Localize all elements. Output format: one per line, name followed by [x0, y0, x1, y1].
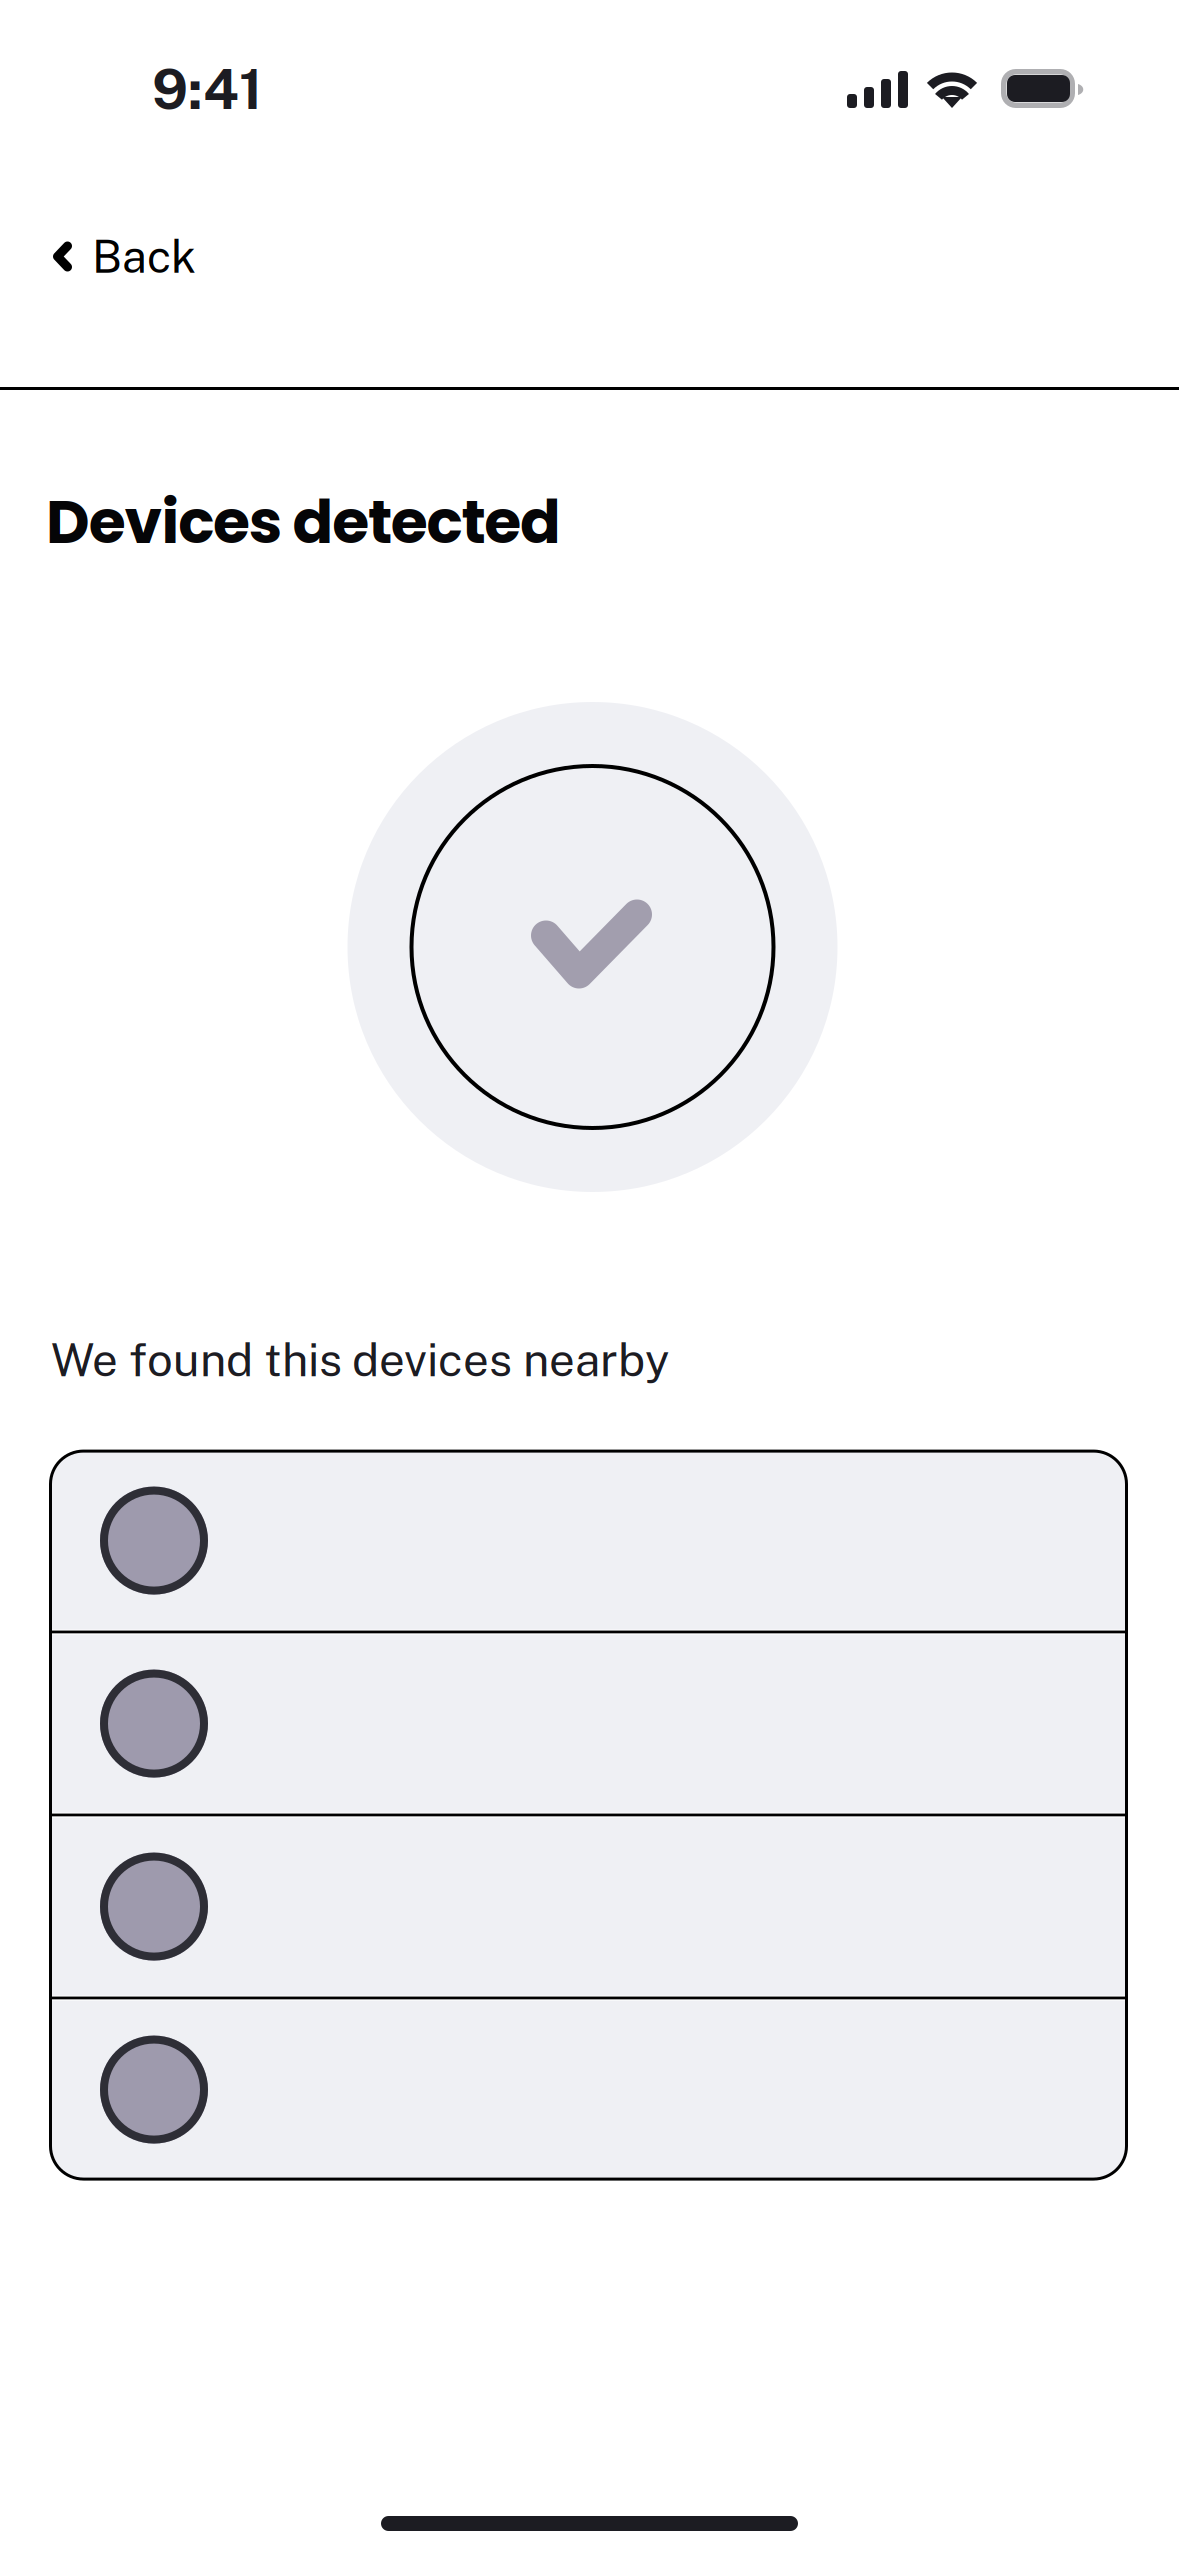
button[interactable]: Back — [0, 160, 1179, 387]
staticText: Back — [92, 230, 196, 283]
staticText: Devices detected — [46, 480, 561, 564]
staticText: 9:41 — [152, 57, 262, 121]
button[interactable]: Nearby device 3 — [51, 1818, 1126, 1996]
button[interactable]: Nearby device 1 — [51, 1452, 1126, 1630]
button[interactable]: Nearby device 4 — [51, 2001, 1126, 2179]
staticText: We found this devices nearby — [51, 1333, 669, 1387]
button[interactable]: Nearby device 2 — [51, 1635, 1126, 1813]
